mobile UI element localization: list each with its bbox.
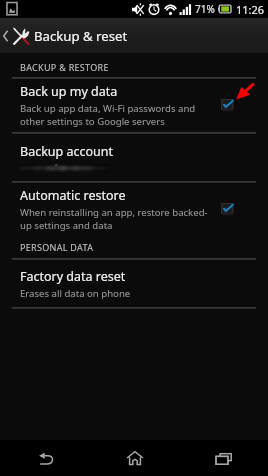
staticText: Erases all data on phone [20,287,131,300]
staticText: Automatic restore [20,187,126,204]
button[interactable]: Backup account [0,134,268,181]
staticText: Backup & reset [34,27,128,45]
staticText: 71% [195,2,215,16]
staticText: Back up app data, Wi-Fi passwords and ot… [20,102,196,128]
staticText: PERSONAL DATA [20,241,94,253]
staticText: Back up my data [20,83,118,100]
button[interactable]: Back up my data [0,79,268,132]
button[interactable]: Home [90,440,179,476]
button[interactable]: Toggle Back up my data [221,99,234,112]
button[interactable]: Backup & reset [0,18,268,53]
staticText: Backup account [20,143,114,160]
button[interactable]: Factory data reset [0,260,268,307]
button[interactable]: Back [0,440,90,476]
staticText: Factory data reset [20,268,126,285]
staticText: 11:26 [236,2,265,17]
staticText: When reinstalling an app, restore backed… [20,206,208,232]
button[interactable]: Automatic restore [0,183,268,236]
button[interactable]: Toggle Automatic restore [221,203,234,216]
staticText: BACKUP & RESTORE [20,61,109,73]
button[interactable]: Recent apps [179,440,268,476]
